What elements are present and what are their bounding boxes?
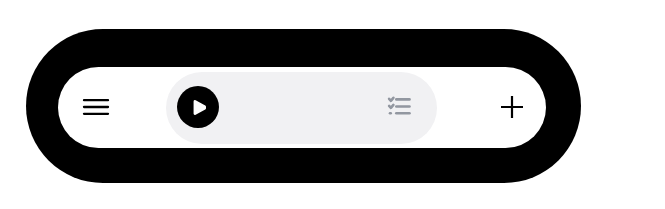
button[interactable]: Play	[166, 72, 437, 144]
button[interactable]: Add	[480, 75, 544, 139]
button[interactable]: Menu	[64, 75, 128, 139]
button[interactable]: Queue	[375, 81, 424, 130]
button[interactable]: Play	[177, 86, 219, 128]
